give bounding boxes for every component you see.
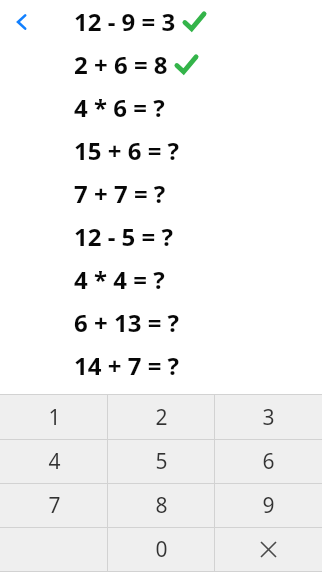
staticText: 3 [262, 403, 275, 432]
staticText: 12 - 5 = ? [74, 220, 173, 253]
button[interactable]: 6 [215, 440, 322, 483]
button[interactable]: 8 + 8 = ? [0, 387, 322, 430]
button[interactable]: 7 [0, 484, 108, 527]
staticText: 15 + 6 = ? [74, 134, 180, 167]
button[interactable]: 5 [108, 440, 215, 483]
staticText: 8 [155, 491, 168, 520]
button[interactable]: 3 [215, 395, 322, 439]
staticText: 6 + 13 = ? [74, 306, 180, 339]
button[interactable]: 6 + 13 = ? [0, 301, 322, 344]
button[interactable]: 7 + 7 = ? [0, 172, 322, 215]
staticText: 7 [48, 491, 61, 520]
button[interactable]: 2 + 6 = 8 [0, 43, 322, 86]
staticText: 0 [155, 535, 168, 564]
button[interactable]: 1 [0, 395, 108, 439]
staticText: 4 [48, 447, 61, 476]
staticText: 7 + 7 = ? [74, 177, 166, 210]
button[interactable]: 12 - 9 = 3 [0, 0, 322, 43]
staticText: 4 * 6 = ? [74, 91, 165, 124]
button[interactable]: Back [6, 6, 38, 38]
button[interactable]: 14 + 7 = ? [0, 344, 322, 387]
button[interactable]: 0 [108, 528, 215, 571]
staticText: 2 + 6 = 8 [74, 48, 168, 81]
button[interactable]: 12 - 5 = ? [0, 215, 322, 258]
button[interactable]: 4 * 4 = ? [0, 258, 322, 301]
button[interactable]: 4 [0, 440, 108, 483]
staticText: 6 [262, 447, 275, 476]
staticText: 2 [155, 403, 168, 432]
staticText: 12 - 9 = 3 [74, 5, 176, 38]
staticText: 9 [262, 491, 275, 520]
button[interactable]: 15 + 6 = ? [0, 129, 322, 172]
button[interactable]: Backspace [215, 528, 322, 571]
button[interactable]: 2 [108, 395, 215, 439]
staticText: 14 + 7 = ? [74, 349, 180, 382]
staticText: 5 [155, 447, 168, 476]
button[interactable]: 8 [108, 484, 215, 527]
staticText: 4 * 4 = ? [74, 263, 165, 296]
staticText: 8 + 8 = ? [74, 392, 166, 425]
button[interactable]: 4 * 6 = ? [0, 86, 322, 129]
staticText: 1 [48, 403, 61, 432]
button[interactable]: 9 [215, 484, 322, 527]
